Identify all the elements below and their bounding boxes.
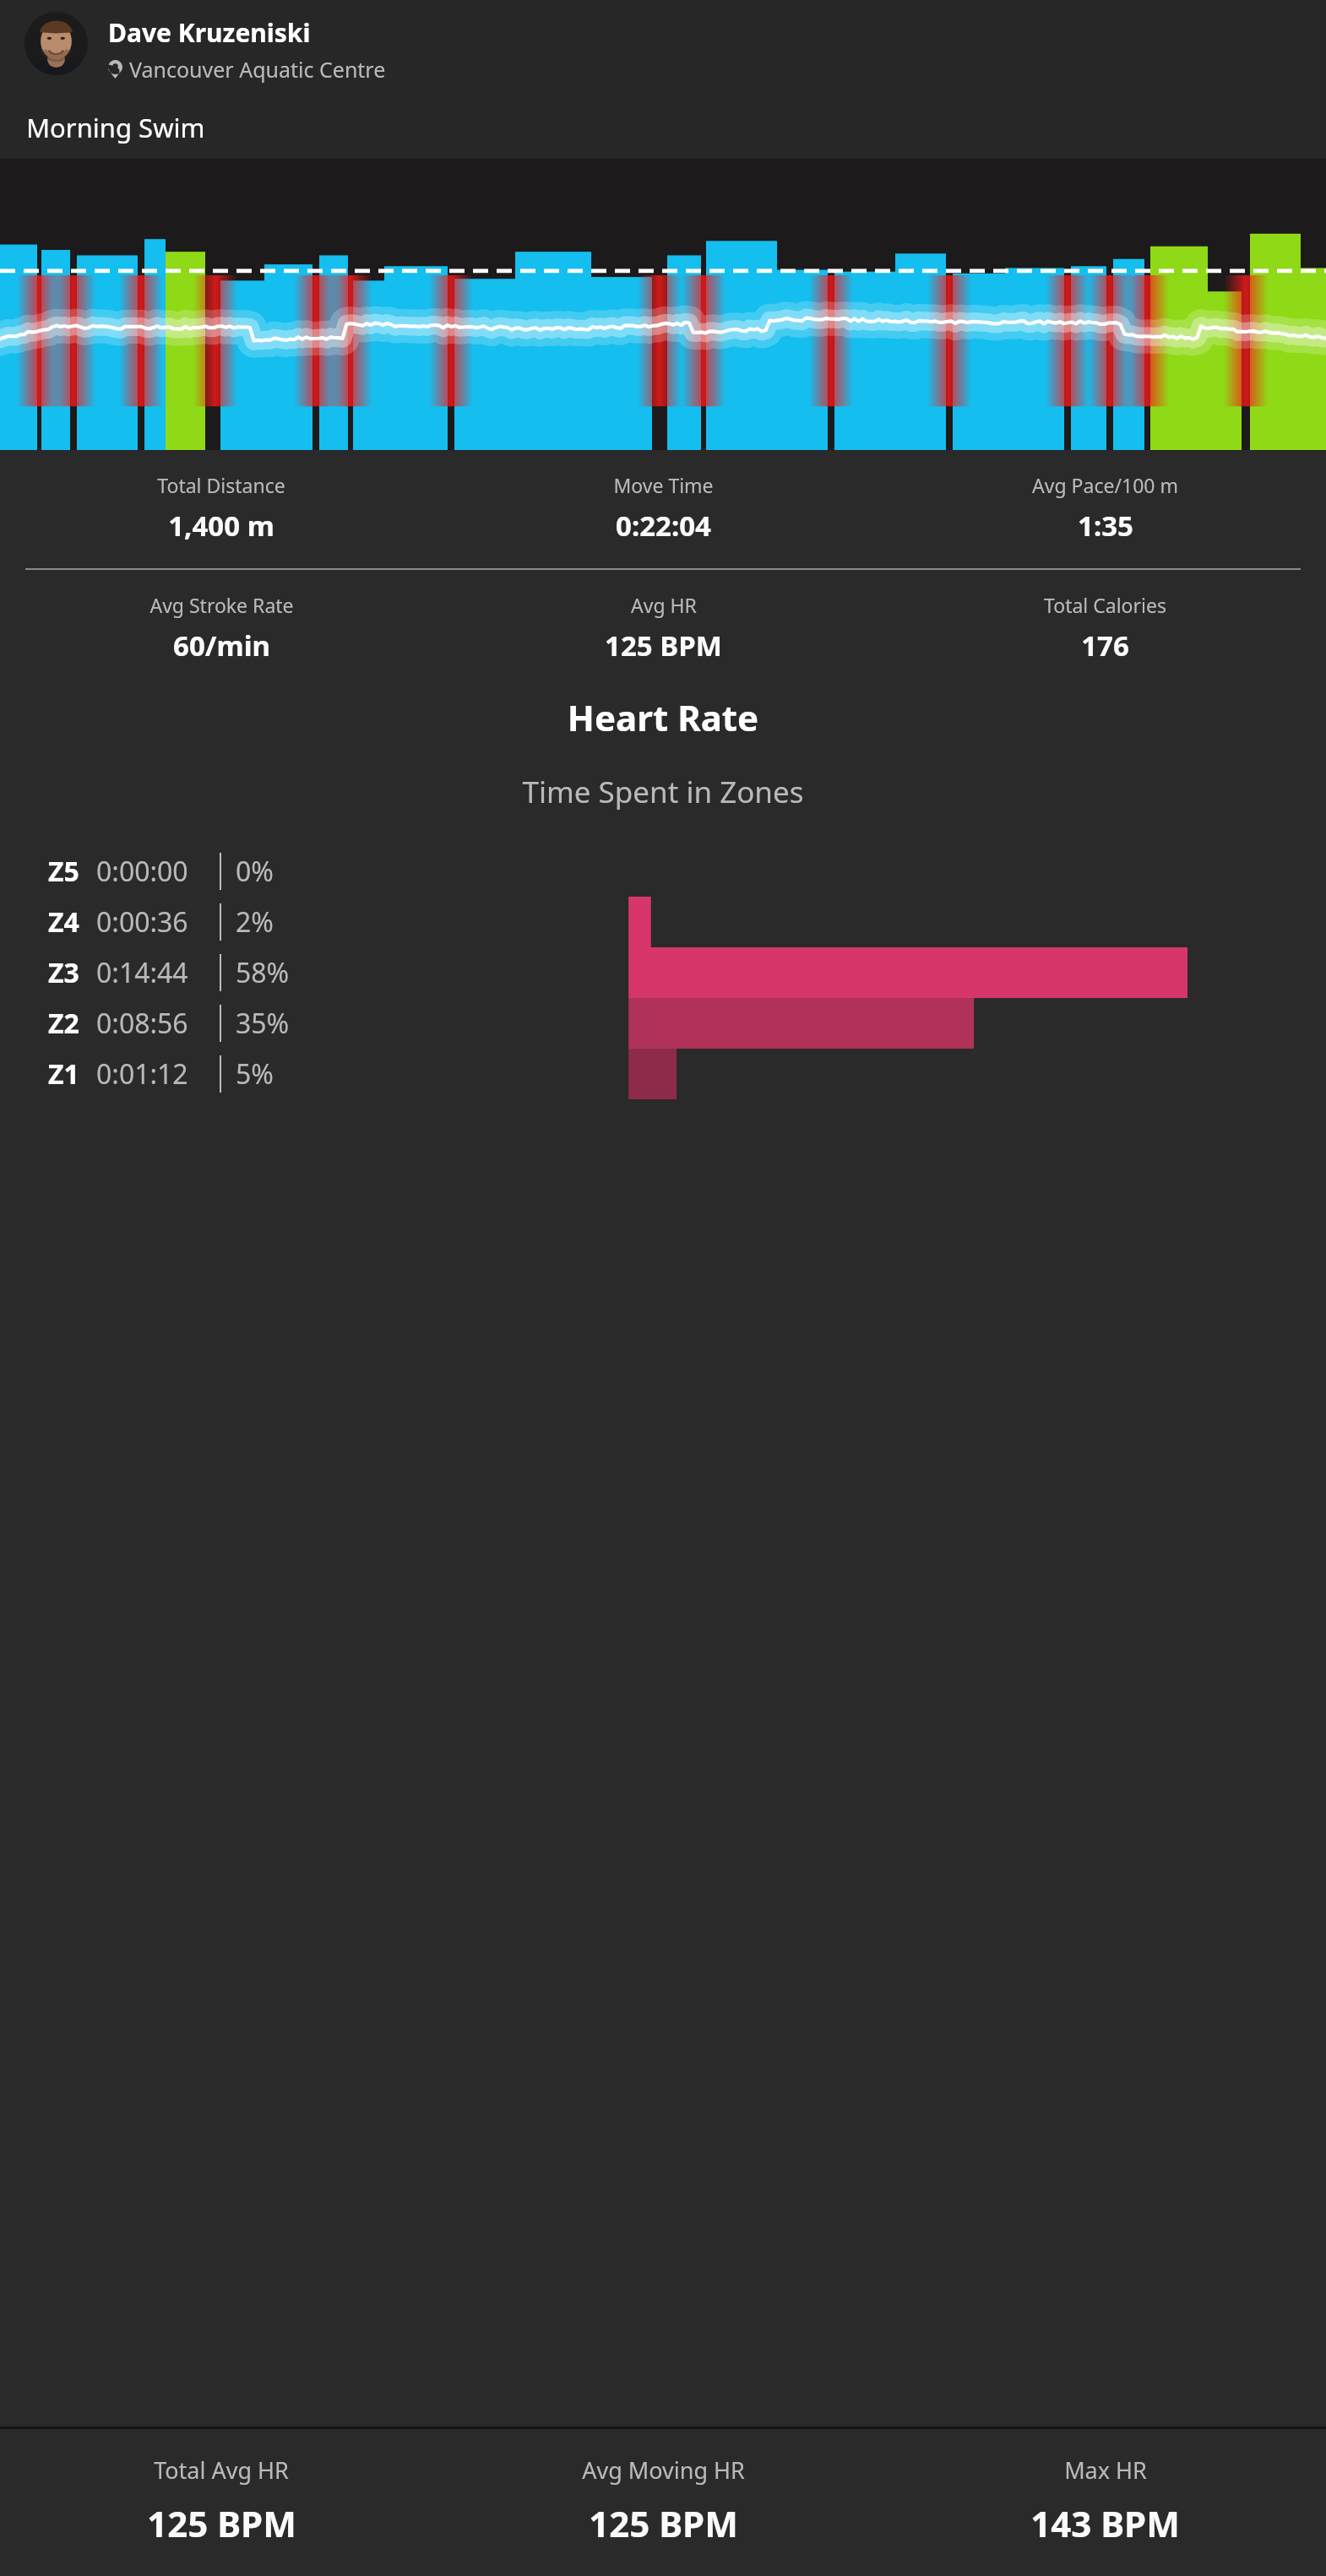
staticText: Z5 xyxy=(48,853,89,890)
staticText: Total Distance xyxy=(157,472,285,498)
button[interactable]: Z2 xyxy=(0,998,1326,1049)
staticText: Avg Stroke Rate xyxy=(149,592,294,618)
staticText: 176 xyxy=(1081,626,1129,664)
staticText: 0:22:04 xyxy=(616,507,711,545)
button[interactable]: Z3 xyxy=(0,947,1326,998)
staticText: 125 BPM xyxy=(589,2499,738,2547)
staticText: 0:14:44 xyxy=(96,954,208,991)
staticText: Avg Moving HR xyxy=(582,2454,745,2486)
staticText: Z4 xyxy=(48,903,89,941)
staticText: 125 BPM xyxy=(605,626,722,664)
button[interactable]: Max HR xyxy=(884,2454,1326,2547)
staticText: Total Avg HR xyxy=(154,2454,289,2486)
staticText: Avg Pace/100 m xyxy=(1032,472,1178,498)
button[interactable]: Swim activity chart xyxy=(0,159,1326,450)
staticText: 1:35 xyxy=(1078,507,1133,545)
button[interactable]: Total Calories xyxy=(884,588,1326,668)
button[interactable]: Avg Pace/100 m xyxy=(884,469,1326,548)
staticText: 35% xyxy=(236,1005,290,1042)
staticText: Z3 xyxy=(48,954,89,991)
staticText: 0% xyxy=(236,853,274,890)
staticText: Time Spent in Zones xyxy=(0,772,1326,812)
staticText: 0:01:12 xyxy=(96,1055,208,1093)
staticText: 1,400 m xyxy=(168,507,274,545)
staticText: Z2 xyxy=(48,1005,89,1042)
staticText: Dave Kruzeniski xyxy=(108,15,311,50)
staticText: Move Time xyxy=(613,472,714,498)
staticText: 2% xyxy=(236,903,274,941)
staticText: 0:00:00 xyxy=(96,853,208,890)
button[interactable]: Profile photo xyxy=(24,12,88,75)
staticText: 58% xyxy=(236,954,290,991)
button[interactable]: Z4 xyxy=(0,897,1326,947)
staticText: Max HR xyxy=(1064,2454,1147,2486)
button[interactable]: Move Time xyxy=(443,469,884,548)
staticText: 0:00:36 xyxy=(96,903,208,941)
staticText: Total Calories xyxy=(1044,592,1166,618)
staticText: 5% xyxy=(236,1055,274,1093)
staticText: Z1 xyxy=(48,1055,89,1093)
button[interactable]: Total Avg HR xyxy=(0,2454,443,2547)
staticText: 60/min xyxy=(173,626,270,664)
button[interactable]: Z1 xyxy=(0,1049,1326,1099)
staticText: Vancouver Aquatic Centre xyxy=(129,55,386,84)
button[interactable]: Z5 xyxy=(0,846,1326,897)
button[interactable]: Avg Moving HR xyxy=(443,2454,884,2547)
staticText: 143 BPM xyxy=(1030,2499,1180,2547)
button[interactable]: Avg Stroke Rate xyxy=(0,588,443,668)
button[interactable]: Avg HR xyxy=(443,588,884,668)
button[interactable]: Total Distance xyxy=(0,469,443,548)
staticText: 125 BPM xyxy=(147,2499,296,2547)
staticText: 0:08:56 xyxy=(96,1005,208,1042)
staticText: Avg HR xyxy=(631,592,697,618)
staticText: Morning Swim xyxy=(26,110,205,145)
staticText: Heart Rate xyxy=(0,693,1326,741)
